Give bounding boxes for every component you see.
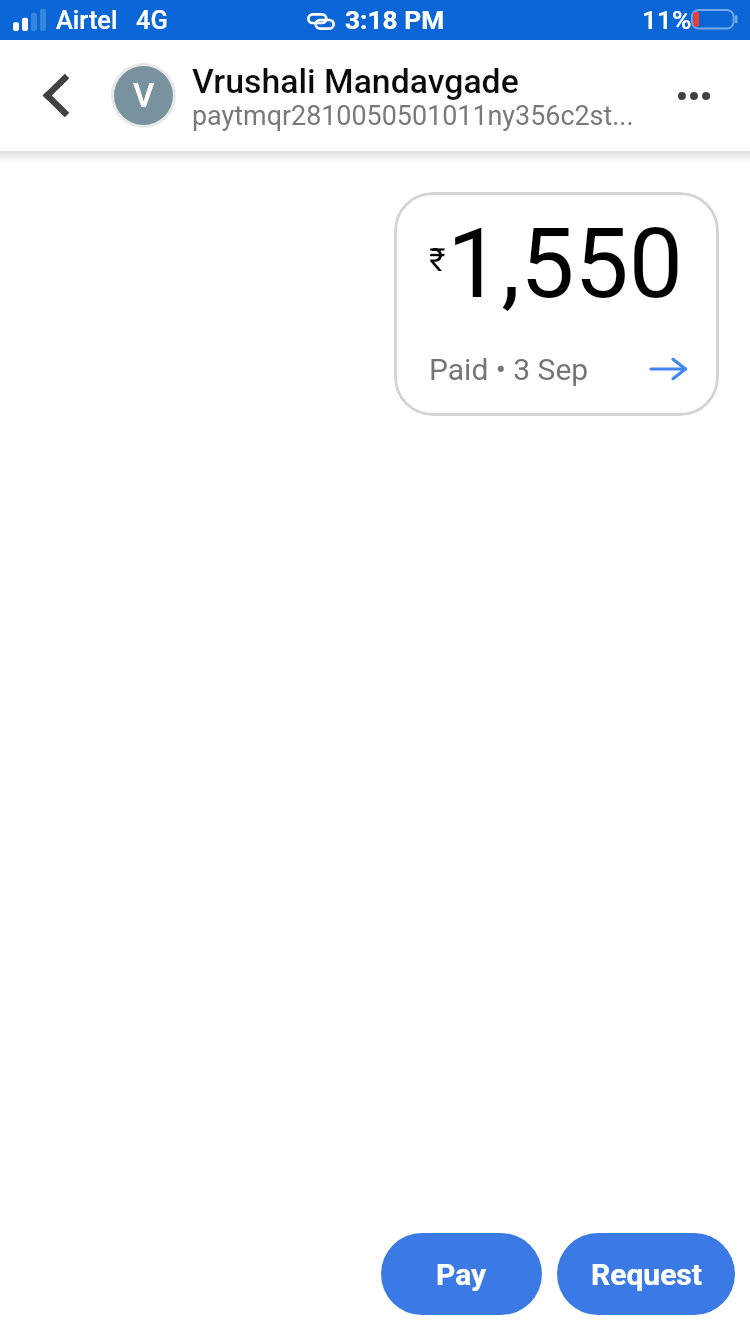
staticText: paytmqr2810050501011ny356c2st... (192, 100, 662, 132)
staticText: V (133, 76, 155, 115)
staticText: Pay (436, 1257, 487, 1292)
staticText: 11% (642, 5, 692, 36)
button[interactable]: Pay (381, 1233, 542, 1315)
staticText: Airtel (56, 5, 118, 35)
staticText: ₹ (429, 241, 446, 279)
staticText: 1,550 (447, 207, 683, 320)
button[interactable]: ₹ (394, 192, 719, 416)
staticText: Request (591, 1257, 702, 1292)
button[interactable]: Back (8, 40, 104, 151)
staticText: 3:18 PM (345, 5, 445, 36)
button[interactable]: More options (649, 40, 739, 151)
button[interactable]: Request (557, 1233, 735, 1315)
staticText: Paid • 3 Sep (429, 352, 589, 387)
staticText: 4G (136, 5, 168, 35)
button[interactable] (104, 40, 649, 151)
staticText: Vrushali Mandavgade (192, 62, 662, 102)
